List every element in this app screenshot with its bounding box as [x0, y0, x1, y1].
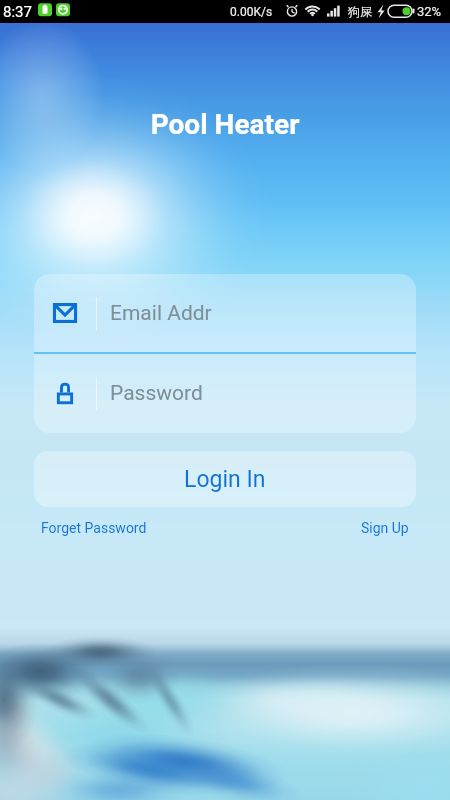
staticText: Email Addr [110, 301, 212, 326]
button[interactable]: Login In [34, 451, 416, 507]
staticText: Pool Heater [0, 108, 450, 141]
button[interactable]: Forget Password [41, 520, 147, 536]
button[interactable]: Email Addr [34, 274, 416, 352]
staticText: Login In [184, 466, 266, 493]
staticText: 0.00K/s [230, 5, 273, 19]
button[interactable]: Password [34, 354, 416, 433]
staticText: Sign Up [361, 520, 409, 536]
staticText: 狗屎 [348, 4, 372, 19]
staticText: Forget Password [41, 520, 147, 536]
staticText: Password [110, 381, 203, 406]
button[interactable]: Sign Up [361, 520, 409, 536]
staticText: 32% [417, 4, 442, 19]
staticText: 8:37 [3, 3, 32, 21]
